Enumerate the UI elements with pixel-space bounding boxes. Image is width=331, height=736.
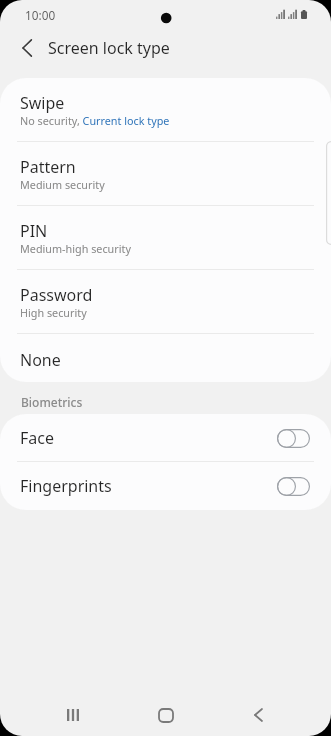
button[interactable]: Fingerprints	[0, 462, 331, 510]
staticText: Biometrics	[21, 394, 83, 410]
button[interactable]: Swipe	[0, 78, 331, 142]
staticText: Pattern	[20, 156, 76, 178]
staticText: Face	[20, 427, 277, 449]
staticText: High security	[20, 305, 87, 320]
button[interactable]: Home	[146, 695, 186, 735]
staticText: Fingerprints	[20, 475, 277, 497]
staticText: Password	[20, 284, 93, 306]
staticText: Screen lock type	[48, 37, 170, 59]
staticText: Swipe	[20, 92, 65, 114]
button[interactable]: Face	[0, 414, 331, 462]
button[interactable]: Pattern	[0, 142, 331, 206]
staticText: 10:00	[25, 7, 56, 23]
staticText: PIN	[20, 220, 48, 242]
button[interactable]: Recent apps	[53, 695, 93, 735]
button[interactable]: None	[0, 334, 331, 382]
button[interactable]: PIN	[0, 206, 331, 270]
staticText: Medium security	[20, 177, 105, 192]
staticText: Medium-high security	[20, 241, 131, 256]
button[interactable]: Password	[0, 270, 331, 334]
button[interactable]: Navigate up	[9, 30, 45, 66]
staticText: None	[20, 349, 61, 371]
button[interactable]: Back	[238, 695, 278, 735]
staticText: No security, Current lock type	[20, 113, 170, 128]
